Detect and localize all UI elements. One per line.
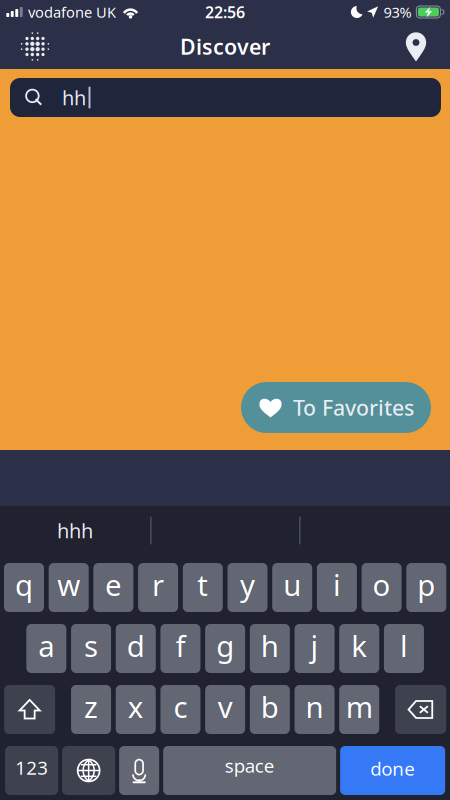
staticText: hh [62,84,86,111]
button[interactable]: d [116,624,156,673]
button[interactable]: f [160,624,200,673]
staticText: w [57,565,80,604]
button[interactable]: n [295,685,335,734]
staticText: v [218,687,233,726]
button[interactable]: w [49,563,89,612]
staticText: a [38,626,54,665]
button[interactable]: l [384,624,424,673]
staticText: i [333,565,341,604]
button[interactable]: y [227,563,267,612]
button[interactable]: j [294,624,334,673]
staticText: l [400,626,408,665]
button[interactable]: e [93,563,133,612]
button[interactable]: u [272,563,312,612]
button[interactable]: b [250,685,290,734]
button[interactable]: q [4,563,44,612]
button[interactable]: i [317,563,357,612]
staticText: u [283,565,301,604]
button[interactable]: hh [10,78,441,117]
button[interactable]: c [160,685,200,734]
button[interactable]: done [340,746,445,795]
button[interactable]: space [163,746,336,795]
button[interactable]: s [71,624,111,673]
staticText: t [197,565,208,604]
staticText: x [128,687,144,726]
staticText: To Favorites [293,393,414,422]
button[interactable]: Shift [4,685,55,734]
button[interactable]: r [138,563,178,612]
button[interactable]: z [71,685,111,734]
button[interactable]: Map [394,24,438,69]
staticText: r [152,565,164,604]
button[interactable]: 123 [5,746,58,795]
staticText: m [346,687,373,726]
staticText: o [373,565,391,604]
staticText: n [306,687,324,726]
staticText: q [15,565,33,604]
staticText: h [261,626,279,665]
button[interactable]: k [339,624,379,673]
staticText: 22:56 [205,1,245,23]
staticText: k [351,626,367,665]
button[interactable]: hhh [0,506,150,555]
button[interactable]: a [26,624,66,673]
staticText: vodafone UK [28,2,116,22]
staticText: b [261,687,279,726]
button[interactable]: Menu [13,24,57,69]
staticText: space [225,753,275,778]
button[interactable]: h [250,624,290,673]
staticText: s [84,626,98,665]
button[interactable]: Next keyboard [62,746,115,795]
button[interactable]: Dictate [119,746,159,795]
staticText: z [84,687,98,726]
staticText: j [310,626,318,665]
staticText: done [370,756,415,781]
staticText: g [216,626,234,665]
button[interactable]: Delete [395,685,446,734]
button[interactable]: m [339,685,379,734]
staticText: hhh [57,517,93,544]
staticText: f [175,626,185,665]
button[interactable] [150,506,300,555]
button[interactable]: To Favorites [241,382,431,433]
button[interactable]: v [205,685,245,734]
staticText: p [417,565,435,604]
button[interactable]: x [116,685,156,734]
staticText: y [240,565,255,604]
button[interactable]: t [183,563,223,612]
staticText: 93% [383,2,411,22]
staticText: c [173,687,187,726]
button[interactable]: g [205,624,245,673]
staticText: Discover [180,32,270,61]
staticText: d [127,626,145,665]
staticText: 123 [15,755,48,780]
button[interactable]: p [406,563,446,612]
staticText: e [105,565,122,604]
button[interactable]: o [362,563,402,612]
